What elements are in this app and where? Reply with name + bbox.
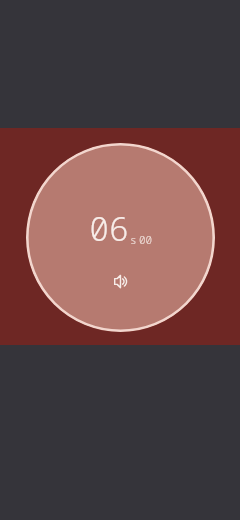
staticText: 06 — [89, 206, 129, 251]
button[interactable]: Toggle sound — [108, 268, 134, 294]
staticText: 00 — [139, 232, 153, 247]
staticText: s — [130, 232, 137, 247]
button[interactable]: 06 — [26, 143, 215, 332]
